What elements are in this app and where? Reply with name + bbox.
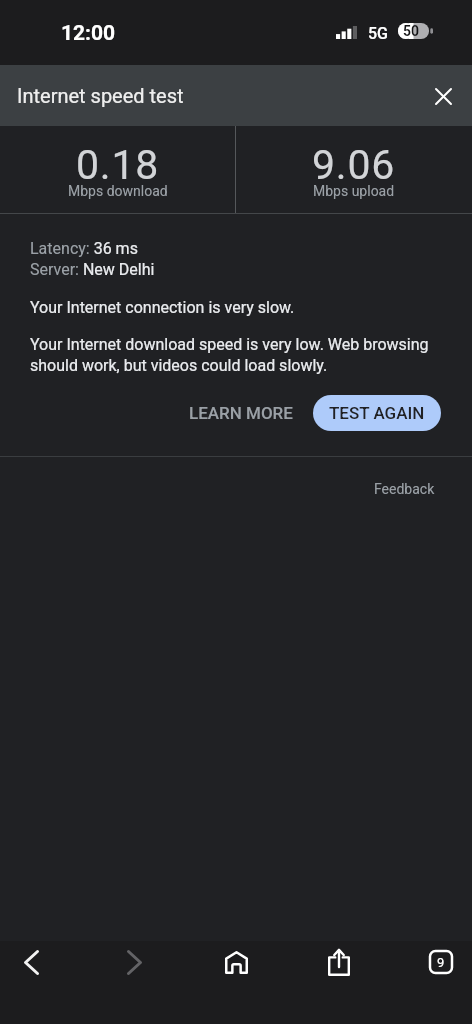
staticText: 0.18 <box>76 141 160 189</box>
button[interactable]: Back <box>3 934 59 990</box>
staticText: Feedback <box>374 481 435 497</box>
staticText: Mbps upload <box>313 183 395 199</box>
button[interactable]: Feedback <box>374 481 435 497</box>
staticText: LEARN MORE <box>189 403 293 423</box>
staticText: TEST AGAIN <box>329 403 425 423</box>
staticText: 50 <box>403 23 420 39</box>
button[interactable]: Share <box>311 934 367 990</box>
button[interactable]: Tabs <box>413 934 469 990</box>
staticText: Your Internet connection is very slow. <box>30 298 295 317</box>
button[interactable]: TEST AGAIN <box>313 395 441 431</box>
button[interactable]: Home <box>208 934 264 990</box>
staticText: Mbps download <box>68 183 168 199</box>
button[interactable]: LEARN MORE <box>177 394 305 432</box>
staticText: 12:00 <box>61 21 116 46</box>
staticText: Your Internet download speed is very low… <box>30 335 452 375</box>
staticText: 9 <box>437 955 445 970</box>
button[interactable]: Forward <box>106 934 162 990</box>
staticText: Internet speed test <box>17 84 184 107</box>
staticText: 5G <box>368 24 388 43</box>
button[interactable]: Close <box>424 77 462 115</box>
staticText: Latency: 36 ms Server: New Delhi <box>30 239 155 279</box>
staticText: 9.06 <box>312 141 396 189</box>
